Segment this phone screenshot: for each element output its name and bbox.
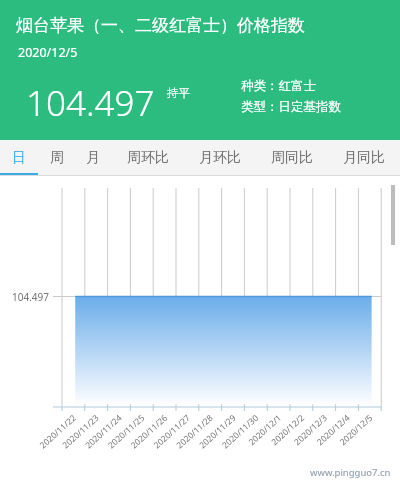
staticText: 类型：日定基指数 [241,99,341,115]
staticText: 持平 [167,86,190,100]
staticText: 周 [50,149,64,167]
staticText: 月同比 [343,149,385,167]
button[interactable]: 周 [42,140,72,176]
button[interactable]: 月同比 [333,140,395,176]
button[interactable]: 月 [78,140,108,176]
button[interactable]: 周同比 [261,140,323,176]
staticText: 周同比 [271,149,313,167]
button[interactable]: 周环比 [117,140,179,176]
staticText: 月环比 [199,149,241,167]
staticText: 日 [12,149,26,167]
staticText: 104.497 [26,79,155,127]
button[interactable]: 月环比 [189,140,251,176]
staticText: www.pingguo7.cn [310,466,391,479]
staticText: 种类：红富士 [241,78,316,94]
staticText: 烟台苹果（一、二级红富士）价格指数 [16,15,305,36]
button[interactable]: 日 [4,140,34,176]
staticText: 周环比 [127,149,169,167]
staticText: 2020/12/5 [18,44,78,61]
staticText: 月 [86,149,100,167]
